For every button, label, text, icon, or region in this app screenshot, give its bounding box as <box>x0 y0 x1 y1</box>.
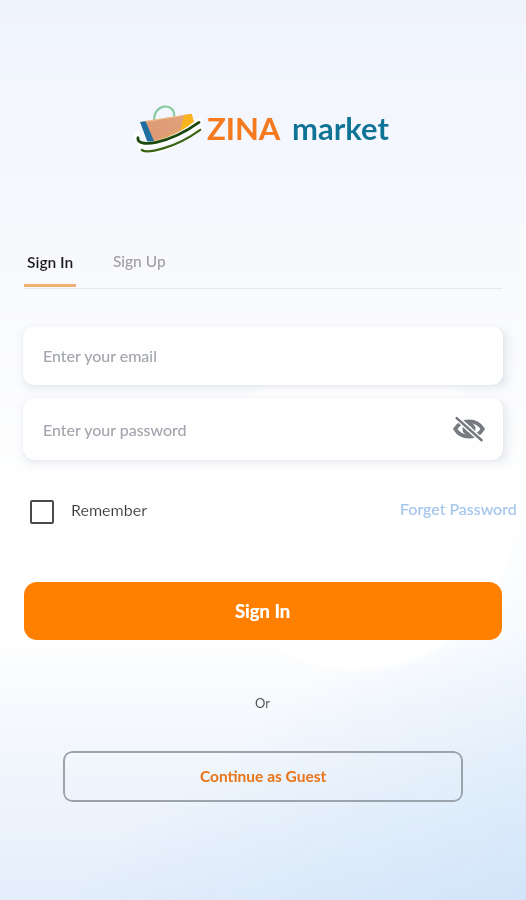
staticText: market <box>292 109 389 146</box>
staticText: Sign In <box>235 600 291 622</box>
button[interactable]: Continue as Guest <box>63 751 463 802</box>
staticText: Remember <box>71 500 147 519</box>
button[interactable]: Sign In <box>24 253 76 287</box>
staticText: Enter your email <box>43 346 157 365</box>
staticText: Sign Up <box>113 252 166 271</box>
button[interactable]: Enter your email <box>23 326 503 385</box>
button[interactable]: Show password <box>448 408 490 450</box>
staticText: Or <box>255 695 271 711</box>
staticText: ZINA <box>207 109 281 146</box>
button[interactable]: Enter your password <box>23 398 503 460</box>
button[interactable]: Remember <box>30 500 147 524</box>
button[interactable]: Forget Password <box>400 499 517 518</box>
staticText: Enter your password <box>43 420 187 439</box>
staticText: Forget Password <box>400 499 517 518</box>
button[interactable]: Sign In <box>24 582 502 640</box>
staticText: Sign In <box>27 253 74 272</box>
button[interactable]: Sign Up <box>113 252 166 271</box>
staticText: Continue as Guest <box>200 767 327 786</box>
